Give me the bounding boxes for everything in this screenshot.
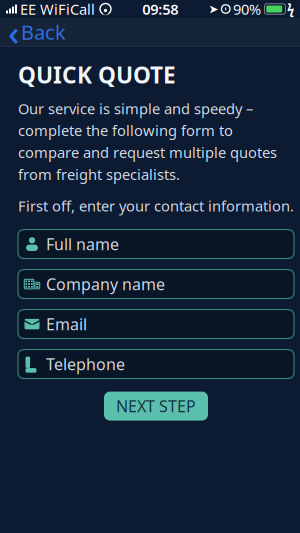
staticText: ‹ <box>8 9 19 55</box>
staticText: 90% <box>233 0 261 19</box>
button[interactable]: Telephone <box>18 350 294 379</box>
staticText: QUICK QUOTE <box>18 60 176 90</box>
staticText: Our service is simple and speedy – compl… <box>18 99 277 184</box>
button[interactable]: Full name <box>18 230 294 259</box>
staticText: Email <box>46 313 87 335</box>
staticText: EE WiFiCall <box>20 0 95 19</box>
button[interactable]: Email <box>18 310 294 339</box>
staticText: ϟ <box>287 0 294 18</box>
staticText: 09:58 <box>142 0 178 19</box>
staticText: ➤ <box>208 2 218 16</box>
staticText: First off, enter your contact informatio… <box>18 196 294 216</box>
staticText: Telephone <box>46 353 125 375</box>
staticText: NEXT STEP <box>116 395 196 417</box>
staticText: Full name <box>46 233 119 255</box>
button[interactable]: Company name <box>18 270 294 299</box>
button[interactable]: NEXT STEP <box>104 392 208 421</box>
staticText: Back <box>21 19 66 45</box>
button[interactable]: ‹ <box>0 18 76 46</box>
staticText: Company name <box>46 273 165 295</box>
